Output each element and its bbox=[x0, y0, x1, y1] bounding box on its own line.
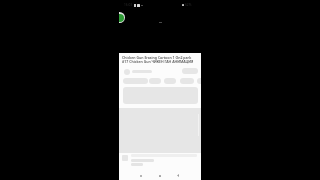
button[interactable]: Download bbox=[164, 78, 176, 84]
button[interactable]: Subscribe bbox=[182, 68, 198, 74]
button[interactable]: Channel avatar bbox=[124, 69, 130, 75]
staticText: #17 Chicken Gun ЧИКЕН ГАН АНИМАЦИЯ bbox=[122, 59, 194, 64]
button[interactable]: Back bbox=[171, 170, 185, 180]
staticText: Chicken Gun Erasing Cartoon 1 On2 park bbox=[122, 55, 192, 60]
button[interactable]: Home bbox=[134, 170, 148, 180]
staticText: 62% bbox=[185, 3, 192, 7]
button[interactable]: Recent apps bbox=[153, 170, 167, 180]
button[interactable]: Share bbox=[149, 78, 161, 84]
button[interactable]: Like bbox=[123, 78, 148, 84]
staticText: 16:03 bbox=[124, 3, 133, 7]
button[interactable]: Save bbox=[180, 78, 194, 84]
